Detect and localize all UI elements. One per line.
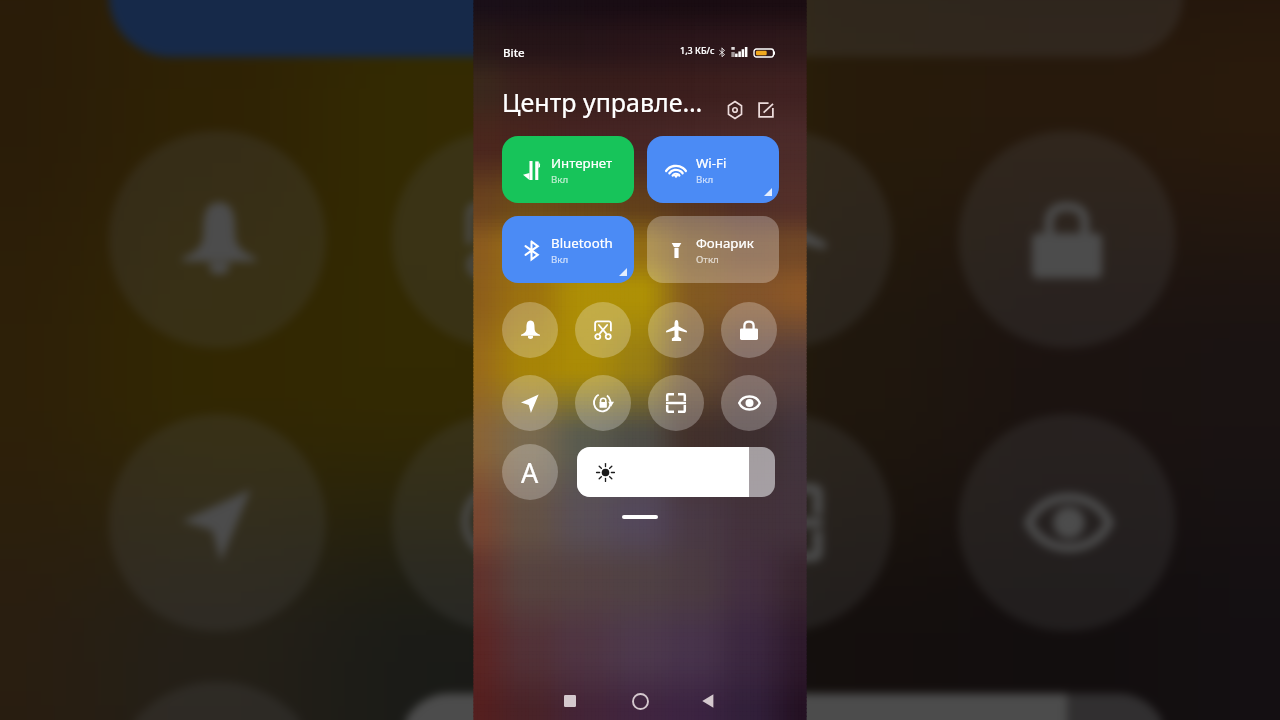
button[interactable]: Reading mode (958, 414, 1176, 631)
staticText: Фонарик (696, 234, 754, 252)
button[interactable]: Auto rotate (575, 375, 631, 431)
button[interactable]: Settings (721, 96, 749, 124)
staticText: Интернет (551, 154, 613, 172)
button[interactable]: Brightness (400, 693, 1168, 720)
button[interactable]: Edit (752, 96, 780, 124)
button[interactable]: Фонарик (671, 0, 1183, 57)
button[interactable]: Do not disturb (109, 131, 326, 348)
button[interactable]: Фонарик (647, 216, 779, 283)
button[interactable]: Cast screen (575, 302, 631, 358)
button[interactable]: Home (615, 676, 665, 720)
button[interactable]: Location (109, 414, 326, 631)
button[interactable]: Cast screen (392, 131, 609, 348)
button[interactable]: Airplane mode (675, 131, 892, 348)
button[interactable]: Lock screen (721, 302, 777, 358)
staticText: 1,3 КБ/с (680, 44, 715, 56)
button[interactable]: Scan QR code (648, 375, 704, 431)
button[interactable]: Recents (545, 676, 595, 720)
button[interactable]: Brightness (577, 447, 775, 497)
staticText: Bite (503, 45, 525, 61)
staticText: Bluetooth (551, 234, 613, 252)
staticText: A (521, 454, 539, 491)
button[interactable]: Location (502, 375, 558, 431)
staticText: Wi-Fi (696, 154, 727, 172)
button[interactable]: Automatic brightness (109, 682, 326, 720)
button[interactable]: Lock screen (958, 131, 1176, 348)
button[interactable]: Do not disturb (502, 302, 558, 358)
staticText: Вкл (696, 173, 714, 186)
staticText: Центр управле… (502, 85, 703, 119)
button[interactable]: Automatic brightness (502, 444, 558, 500)
button[interactable]: Airplane mode (648, 302, 704, 358)
button[interactable]: Back (683, 676, 733, 720)
staticText: Вкл (551, 173, 569, 186)
button[interactable]: Scan QR code (675, 414, 892, 631)
staticText: Вкл (551, 253, 569, 266)
button[interactable]: Wi-Fi (647, 136, 779, 203)
button[interactable]: Bluetooth (109, 0, 621, 57)
button[interactable]: Bluetooth (502, 216, 634, 283)
button[interactable]: Интернет (502, 136, 634, 203)
button[interactable]: Auto rotate (392, 414, 609, 631)
staticText: Откл (696, 253, 719, 266)
button[interactable]: Reading mode (721, 375, 777, 431)
